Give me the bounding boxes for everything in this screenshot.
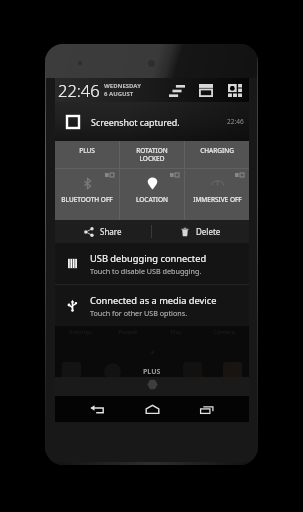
staticText: USB debugging connected — [90, 252, 207, 265]
button[interactable]: USB debugging connected — [55, 243, 249, 284]
staticText: Delete — [196, 226, 221, 237]
staticText: Touch to disable USB debugging. — [90, 266, 202, 276]
button[interactable]: IMMERSIVE OFF — [185, 169, 249, 220]
button[interactable]: Share — [55, 220, 151, 243]
button[interactable]: Recent apps — [194, 396, 220, 422]
staticText: LOCATION — [136, 195, 168, 204]
button[interactable]: PLUS — [55, 141, 119, 168]
button[interactable]: BLUETOOTH OFF — [55, 169, 119, 220]
staticText: 22:46 — [58, 79, 100, 101]
staticText: Camera — [213, 328, 235, 336]
button[interactable]: Quick settings — [226, 82, 243, 99]
staticText: People — [118, 328, 138, 336]
button[interactable]: Window mode — [197, 82, 214, 99]
button[interactable]: Back — [84, 396, 110, 422]
staticText: 22:46 — [227, 117, 244, 126]
button[interactable]: Home — [139, 396, 165, 422]
button[interactable]: LOCATION — [120, 169, 184, 220]
button[interactable]: ROTATION LOCKED — [120, 141, 184, 168]
button[interactable]: CHARGING — [185, 141, 249, 168]
staticText: PLUS — [79, 146, 95, 155]
staticText: CHARGING — [200, 146, 234, 155]
staticText: Connected as a media device — [90, 294, 217, 307]
staticText: ROTATION LOCKED — [136, 146, 168, 163]
staticText: Touch for other USB options. — [90, 308, 188, 318]
staticText: Screenshot captured. — [91, 116, 180, 128]
staticText: Play — [170, 328, 182, 336]
button[interactable]: Screenshot captured. — [55, 102, 249, 141]
staticText: PLUS — [143, 367, 161, 377]
staticText: BLUETOOTH OFF — [61, 195, 113, 204]
staticText: Share — [100, 226, 122, 237]
staticText: WEDNESDAY — [104, 82, 141, 90]
staticText: Settings — [69, 328, 92, 336]
button[interactable]: Sort tiles — [168, 82, 185, 99]
staticText: 6 AUGUST — [104, 90, 134, 98]
button[interactable]: Connected as a media device — [55, 285, 249, 326]
button[interactable]: Delete — [152, 220, 249, 243]
staticText: IMMERSIVE OFF — [193, 195, 242, 204]
